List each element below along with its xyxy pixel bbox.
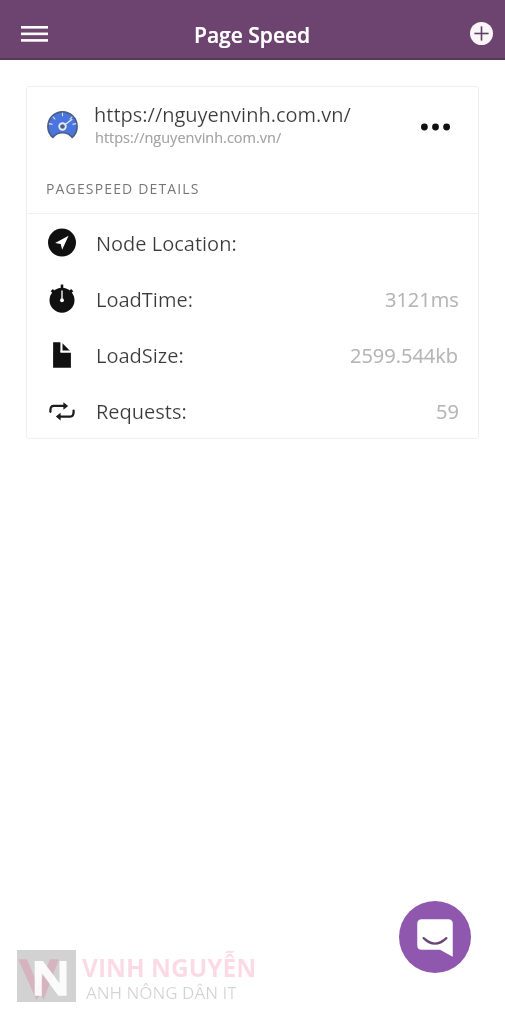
staticText: https://nguyenvinh.com.vn/	[95, 128, 282, 148]
button[interactable]: LoadSize:	[26, 327, 479, 383]
staticText: LoadSize:	[96, 342, 184, 369]
staticText: https://nguyenvinh.com.vn/	[94, 101, 351, 128]
staticText: Page Speed	[194, 21, 311, 50]
staticText: VINH NGUYỄN	[82, 951, 257, 984]
staticText: Node Location:	[96, 230, 237, 257]
staticText: LoadTime:	[96, 286, 193, 313]
button[interactable]: Node Location:	[26, 215, 479, 271]
button[interactable]: LoadTime:	[26, 271, 479, 327]
staticText: 59	[436, 398, 459, 425]
button[interactable]: Add	[459, 12, 503, 56]
staticText: 2599.544kb	[350, 342, 459, 369]
staticText: ANH NÔNG DÂN IT	[86, 981, 237, 1004]
button[interactable]: More options	[413, 105, 457, 149]
button[interactable]: Requests:	[26, 383, 479, 439]
staticText: PAGESPEED DETAILS	[46, 179, 200, 198]
staticText: Requests:	[96, 398, 187, 425]
button[interactable]: Open chat	[399, 901, 471, 973]
staticText: 3121ms	[385, 286, 459, 313]
button[interactable]: Menu	[9, 10, 59, 55]
